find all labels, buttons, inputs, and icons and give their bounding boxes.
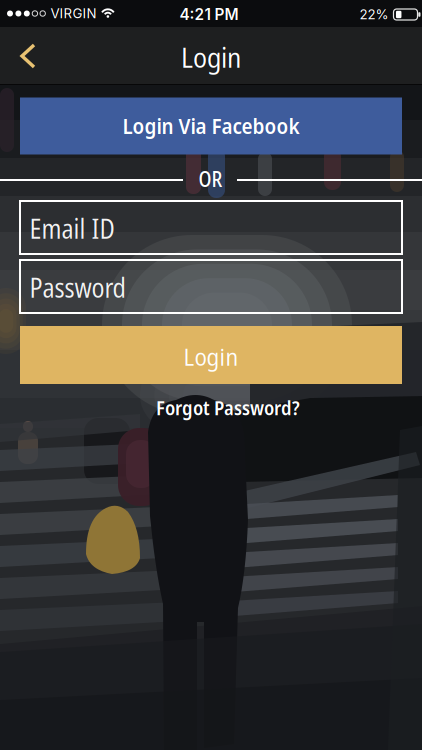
staticText: Login Via Facebook xyxy=(122,112,299,140)
staticText: Forgot Password? xyxy=(156,394,300,421)
staticText: 4:21 PM xyxy=(179,5,238,24)
staticText: Password xyxy=(29,269,125,306)
button[interactable]: Login xyxy=(20,326,402,384)
button[interactable]: Password xyxy=(20,260,402,313)
staticText: Login xyxy=(183,340,238,373)
staticText: OR xyxy=(198,165,222,193)
staticText: Email ID xyxy=(29,210,114,247)
button[interactable]: Email ID xyxy=(20,201,402,254)
staticText: VIRGIN xyxy=(50,5,96,21)
button[interactable]: Back xyxy=(12,35,44,77)
button[interactable]: Forgot Password? xyxy=(152,390,304,425)
staticText: Login xyxy=(181,38,241,76)
button[interactable]: Login Via Facebook xyxy=(20,97,402,154)
staticText: 22% xyxy=(359,6,388,22)
